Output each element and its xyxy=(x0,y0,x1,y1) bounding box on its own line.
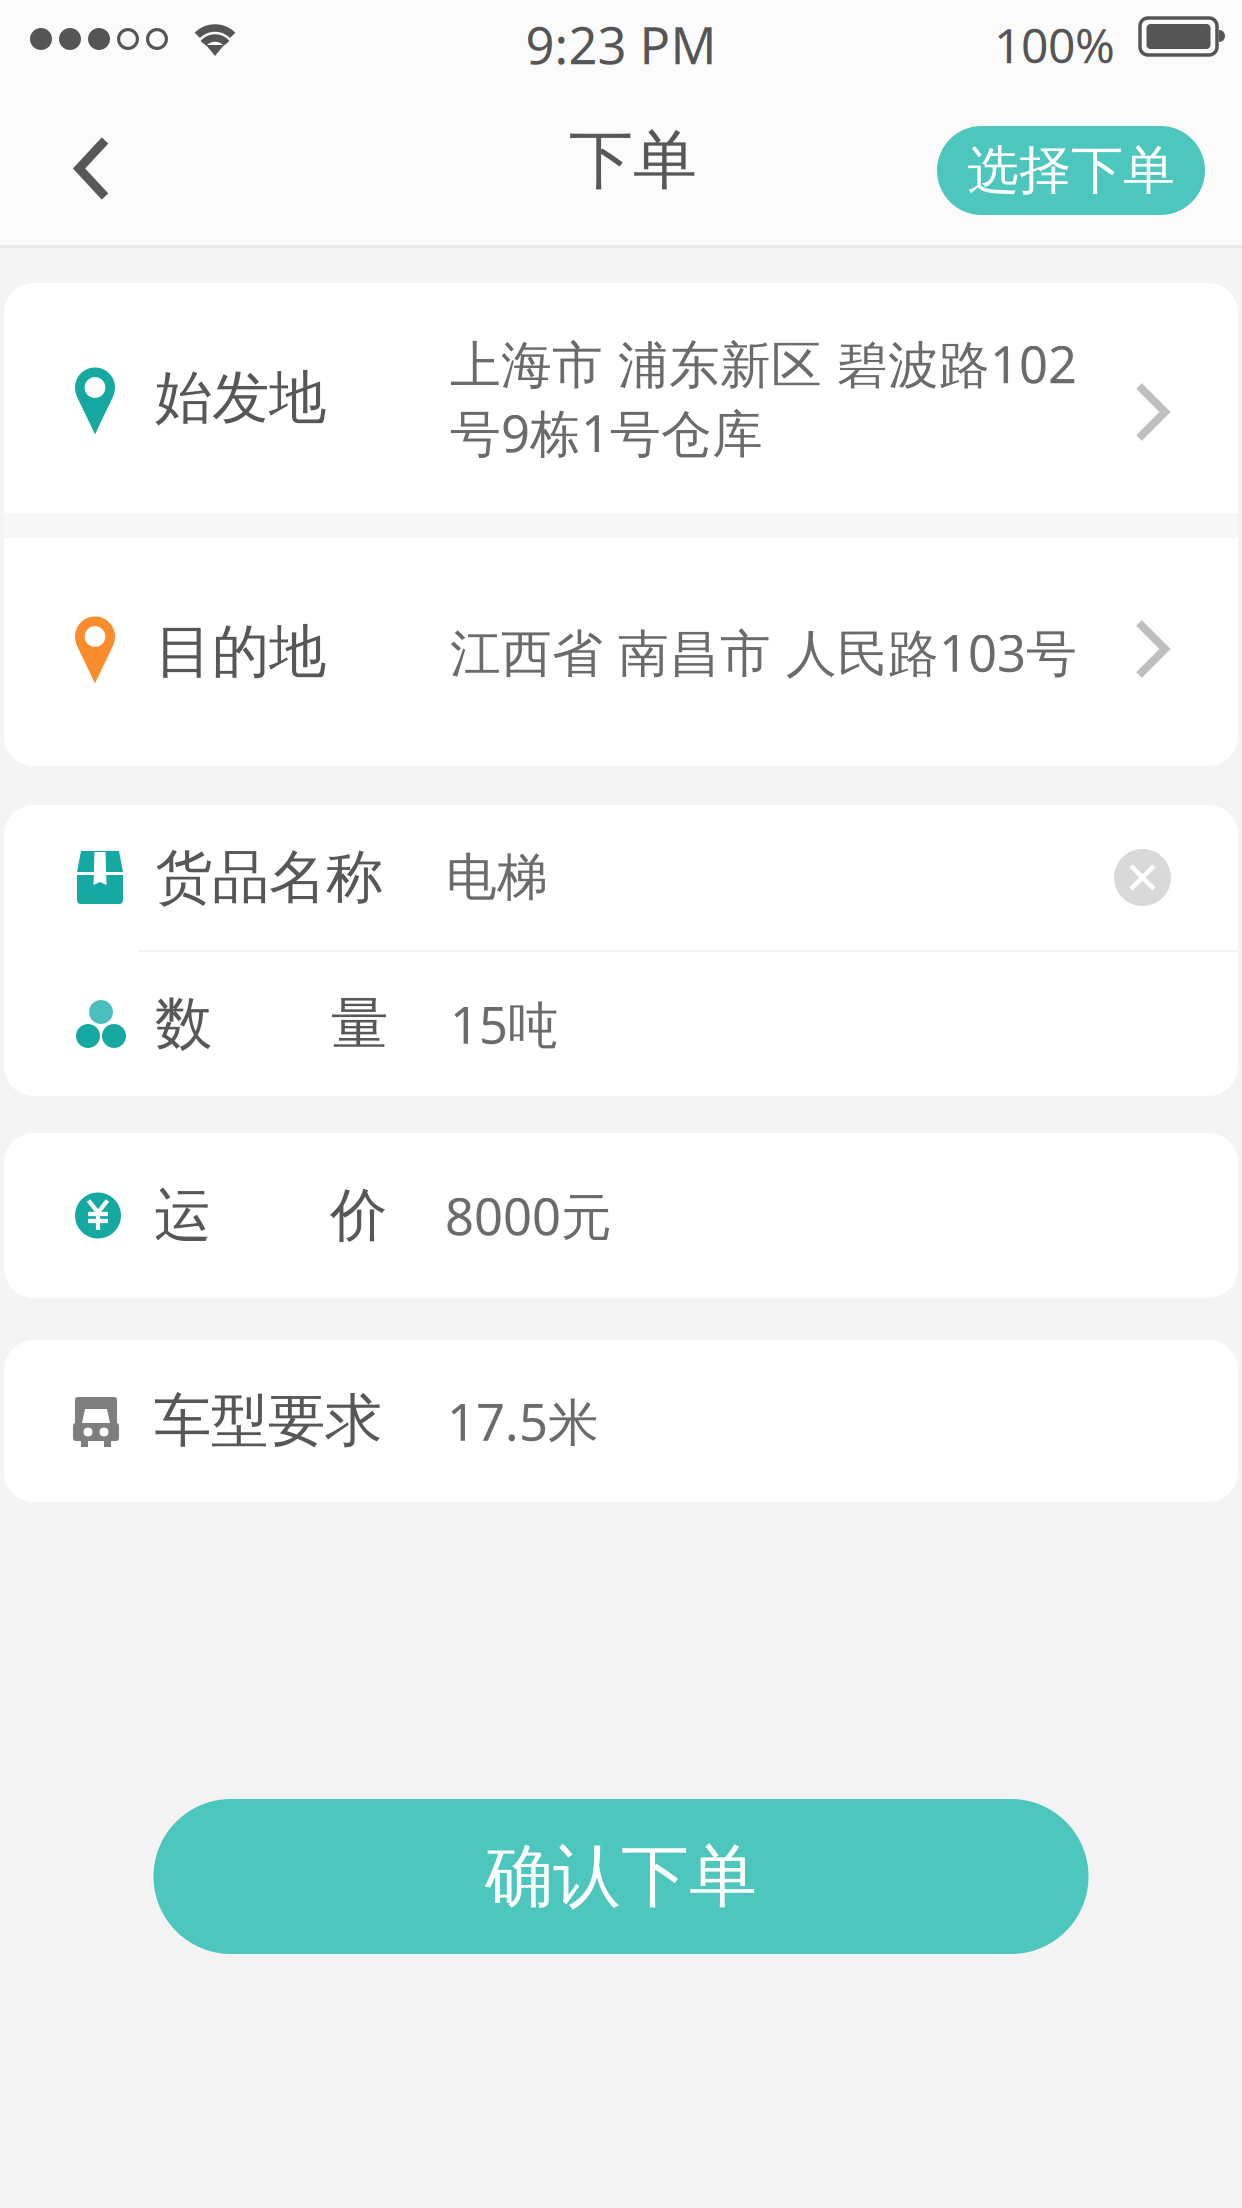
staticText: 17.5米 xyxy=(447,1386,599,1455)
staticText: 确认下单 xyxy=(485,1834,757,1919)
button[interactable]: 目的地 xyxy=(4,538,1238,766)
staticText: 江西省 南昌市 人民路103号 xyxy=(450,617,1077,686)
staticText: 15吨 xyxy=(450,989,559,1058)
staticText: 电梯 xyxy=(446,846,548,909)
button[interactable]: 始发地 xyxy=(4,283,1238,513)
staticText: 8000元 xyxy=(445,1181,612,1250)
staticText: 9:23 PM xyxy=(525,10,716,79)
staticText: 上海市 浦东新区 碧波路102号9栋1号仓库 xyxy=(450,329,1077,467)
staticText: 始发地 xyxy=(155,362,326,434)
staticText: 100% xyxy=(994,12,1115,77)
staticText: 车型要求 xyxy=(154,1385,382,1457)
staticText: 目的地 xyxy=(155,616,326,688)
button[interactable]: 返回 xyxy=(0,84,150,245)
staticText: 下单 xyxy=(569,120,697,201)
staticText: 数 量 xyxy=(155,988,388,1060)
button[interactable]: 确认下单 xyxy=(153,1799,1088,1954)
staticText: 选择下单 xyxy=(967,138,1175,203)
staticText: 货品名称 xyxy=(155,841,383,914)
button[interactable]: 选择下单 xyxy=(937,126,1205,215)
button[interactable]: 清除 xyxy=(1114,849,1171,906)
staticText: 运 价 xyxy=(154,1179,387,1252)
